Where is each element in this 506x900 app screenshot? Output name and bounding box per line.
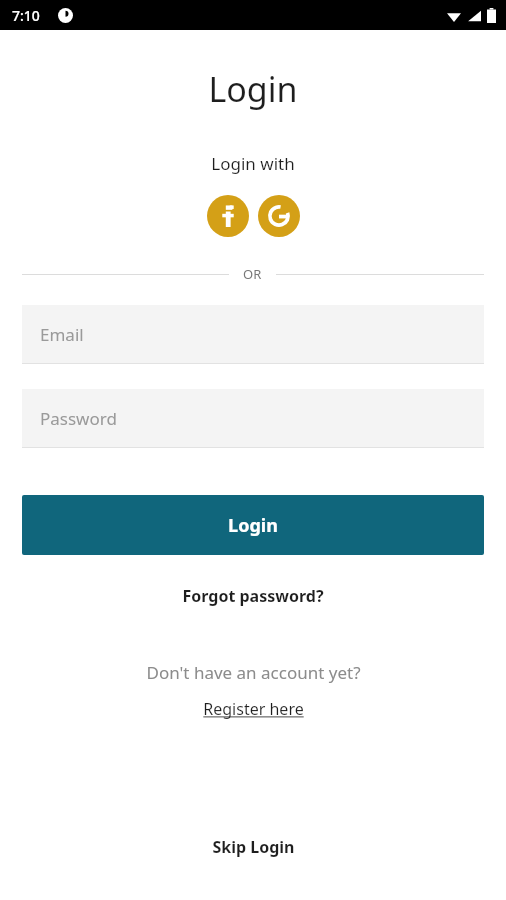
staticText: Login <box>208 66 298 112</box>
staticText: Login <box>228 513 278 538</box>
button[interactable]: Password <box>22 389 484 448</box>
button[interactable]: Login with Facebook <box>207 195 249 237</box>
staticText: 7:10 <box>12 6 40 25</box>
button[interactable]: Skip Login <box>0 828 506 866</box>
button[interactable]: Login <box>22 495 484 555</box>
staticText: Forgot password? <box>182 585 324 607</box>
staticText: OR <box>243 265 262 283</box>
staticText: Skip Login <box>212 836 295 858</box>
button[interactable]: Forgot password? <box>0 577 506 615</box>
staticText: Don't have an account yet? <box>146 661 361 684</box>
button[interactable]: Login with Google <box>258 195 300 237</box>
button[interactable]: Register here <box>0 694 506 724</box>
staticText: Password <box>40 407 117 430</box>
button[interactable]: Email <box>22 305 484 364</box>
staticText: Register here <box>203 698 304 720</box>
staticText: Email <box>40 323 84 346</box>
staticText: Login with <box>211 152 295 175</box>
